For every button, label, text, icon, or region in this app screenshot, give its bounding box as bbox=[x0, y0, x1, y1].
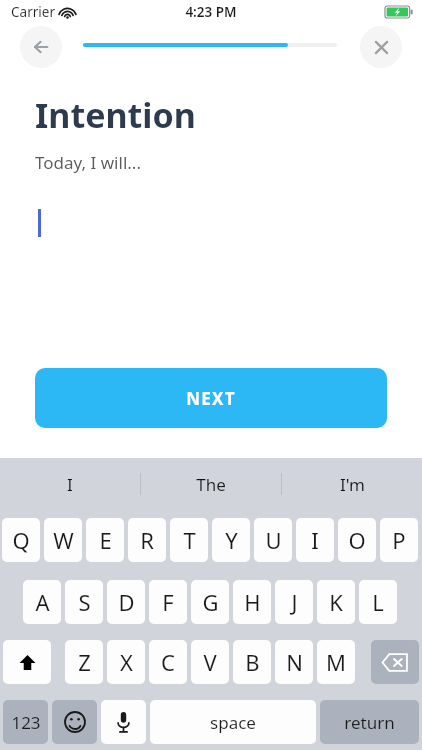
staticText: I'm bbox=[340, 473, 365, 496]
staticText: Z bbox=[78, 647, 91, 677]
button[interactable]: A bbox=[23, 580, 61, 624]
button[interactable]: L bbox=[359, 580, 397, 624]
staticText: H bbox=[244, 587, 261, 617]
button[interactable]: F bbox=[149, 580, 187, 624]
staticText: W bbox=[53, 525, 74, 555]
button[interactable]: P bbox=[380, 518, 418, 562]
button[interactable]: Emoji bbox=[52, 700, 97, 744]
button[interactable]: K bbox=[317, 580, 355, 624]
button[interactable]: Z bbox=[65, 640, 103, 684]
button[interactable]: D bbox=[107, 580, 145, 624]
button[interactable]: W bbox=[44, 518, 82, 562]
button[interactable]: NEXT bbox=[35, 368, 387, 428]
staticText: I bbox=[311, 525, 319, 555]
button[interactable]: C bbox=[149, 640, 187, 684]
staticText: Carrier bbox=[11, 3, 55, 21]
button[interactable]: space bbox=[150, 700, 316, 744]
button[interactable]: R bbox=[128, 518, 166, 562]
staticText: F bbox=[162, 587, 174, 617]
staticText: A bbox=[35, 587, 50, 617]
staticText: B bbox=[245, 647, 260, 677]
staticText: NEXT bbox=[186, 387, 236, 410]
button[interactable]: V bbox=[191, 640, 229, 684]
button[interactable]: X bbox=[107, 640, 145, 684]
staticText: G bbox=[202, 587, 219, 617]
staticText: U bbox=[265, 525, 282, 555]
button[interactable]: Y bbox=[212, 518, 250, 562]
staticText: 4:23 PM bbox=[185, 3, 237, 21]
staticText: T bbox=[183, 525, 196, 555]
button[interactable]: Shift bbox=[3, 640, 51, 684]
staticText: 123 bbox=[11, 711, 41, 734]
button[interactable]: U bbox=[254, 518, 292, 562]
staticText: Today, I will... bbox=[35, 151, 141, 174]
button[interactable]: O bbox=[338, 518, 376, 562]
button[interactable]: T bbox=[170, 518, 208, 562]
staticText: R bbox=[140, 525, 154, 555]
button[interactable]: return bbox=[320, 700, 419, 744]
staticText: P bbox=[392, 525, 406, 555]
staticText: space bbox=[210, 711, 256, 734]
button[interactable]: I bbox=[0, 458, 140, 510]
staticText: Q bbox=[12, 525, 30, 555]
staticText: return bbox=[344, 711, 395, 734]
button[interactable]: Close bbox=[360, 26, 402, 68]
staticText: I bbox=[67, 473, 73, 496]
staticText: E bbox=[99, 525, 112, 555]
button[interactable]: J bbox=[275, 580, 313, 624]
button[interactable]: E bbox=[86, 518, 124, 562]
staticText: Intention bbox=[35, 92, 196, 138]
staticText: J bbox=[291, 587, 298, 617]
staticText: M bbox=[326, 647, 346, 677]
button[interactable]: S bbox=[65, 580, 103, 624]
staticText: The bbox=[196, 473, 226, 496]
button[interactable]: G bbox=[191, 580, 229, 624]
button[interactable]: I'm bbox=[282, 458, 422, 510]
button[interactable]: I bbox=[296, 518, 334, 562]
button[interactable]: H bbox=[233, 580, 271, 624]
button[interactable]: B bbox=[233, 640, 271, 684]
staticText: D bbox=[118, 587, 135, 617]
button[interactable]: 123 bbox=[3, 700, 48, 744]
staticText: C bbox=[161, 647, 175, 677]
button[interactable]: N bbox=[275, 640, 313, 684]
staticText: N bbox=[286, 647, 303, 677]
button[interactable]: The bbox=[141, 458, 281, 510]
button[interactable]: Q bbox=[2, 518, 40, 562]
staticText: V bbox=[203, 647, 217, 677]
button[interactable]: Dictate bbox=[101, 700, 146, 744]
staticText: S bbox=[78, 587, 91, 617]
button[interactable]: M bbox=[317, 640, 355, 684]
button[interactable]: Backspace bbox=[371, 640, 419, 684]
staticText: L bbox=[372, 587, 384, 617]
button[interactable]: Back bbox=[20, 26, 62, 68]
staticText: K bbox=[329, 587, 343, 617]
staticText: Y bbox=[225, 525, 238, 555]
staticText: X bbox=[120, 647, 133, 677]
staticText: O bbox=[348, 525, 366, 555]
